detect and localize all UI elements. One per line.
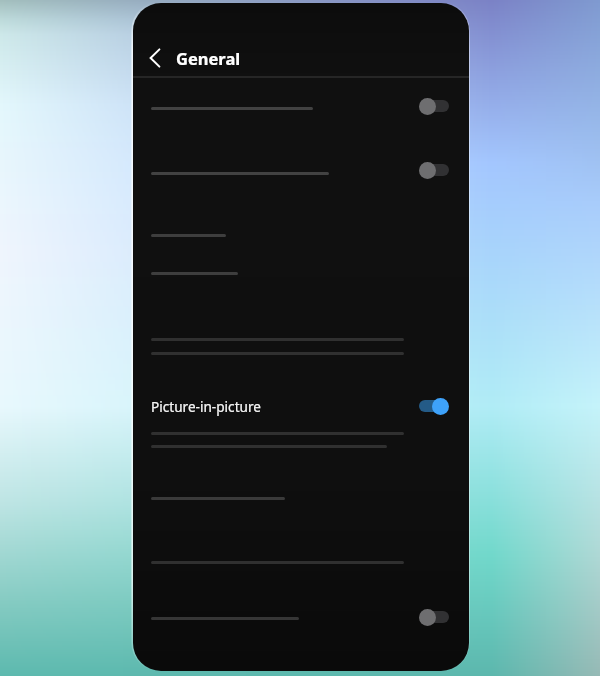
button[interactable]: Toggle, off xyxy=(418,159,452,181)
button[interactable]: Picture-in-picture xyxy=(133,392,469,463)
button[interactable]: Setting four xyxy=(133,240,469,306)
staticText: Picture-in-picture xyxy=(151,397,261,416)
button[interactable]: Toggle, off xyxy=(418,95,452,117)
button[interactable]: Setting three xyxy=(133,202,469,240)
button[interactable]: Back xyxy=(141,44,169,72)
button[interactable]: Setting two xyxy=(133,140,469,202)
button[interactable]: Setting seven xyxy=(133,463,469,527)
button[interactable]: Setting one xyxy=(133,78,469,140)
button[interactable]: Picture-in-picture toggle, on xyxy=(418,395,452,417)
staticText: General xyxy=(176,47,241,69)
button[interactable]: Setting eight xyxy=(133,527,469,589)
button[interactable]: Toggle, off xyxy=(418,606,452,628)
button[interactable]: Setting nine xyxy=(133,589,469,651)
button[interactable]: Setting five xyxy=(133,306,469,392)
